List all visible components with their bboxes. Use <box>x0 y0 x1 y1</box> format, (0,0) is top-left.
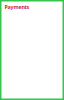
staticText: Payments <box>4 3 29 11</box>
